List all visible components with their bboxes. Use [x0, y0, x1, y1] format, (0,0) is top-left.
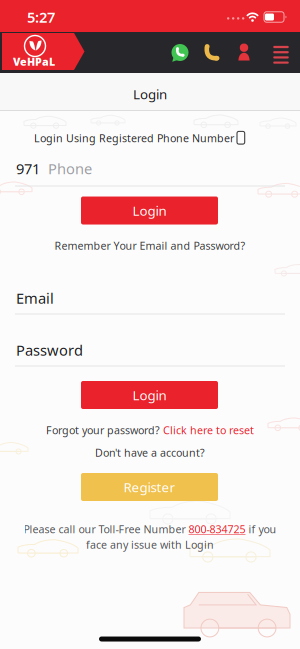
staticText: Register: [123, 478, 175, 496]
staticText: Don't have a account?: [95, 445, 205, 460]
staticText: 971: [16, 159, 40, 178]
staticText: 5:27: [27, 7, 55, 27]
button[interactable]: Login: [81, 381, 218, 409]
staticText: face any issue with Login: [86, 537, 214, 552]
button[interactable]: Account: [232, 41, 256, 65]
button[interactable]: Click here to reset: [163, 423, 254, 437]
staticText: Forgot your password?: [46, 423, 160, 437]
staticText: 800-834725: [188, 522, 245, 536]
staticText: Remember Your Email and Password?: [54, 238, 245, 253]
button[interactable]: 800-834725: [188, 522, 245, 536]
staticText: Login: [132, 386, 166, 404]
button[interactable]: Register: [81, 473, 218, 501]
staticText: Phone: [48, 159, 92, 178]
button[interactable]: Call: [199, 41, 223, 65]
staticText: if you: [245, 522, 276, 536]
staticText: Login: [133, 85, 167, 103]
staticText: Login: [132, 202, 166, 219]
staticText: Please call our Toll-Free Number: [23, 522, 188, 536]
button[interactable]: Login: [81, 196, 218, 224]
staticText: Email: [16, 288, 54, 308]
staticText: Click here to reset: [163, 423, 254, 437]
staticText: Login Using Registered Phone Number: [34, 131, 234, 145]
button[interactable]: WhatsApp: [167, 41, 193, 65]
staticText: VeHPaL: [13, 54, 55, 69]
staticText: Password: [16, 340, 83, 360]
button[interactable]: Menu: [269, 44, 293, 66]
